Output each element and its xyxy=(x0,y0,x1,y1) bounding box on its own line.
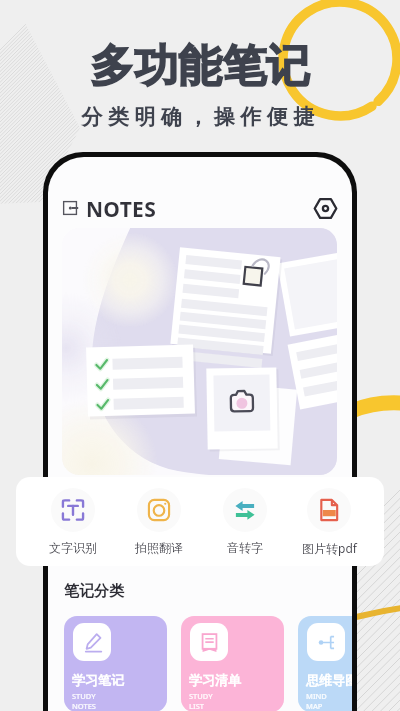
staticText: 多功能笔记 xyxy=(90,39,310,94)
staticText: NOTES xyxy=(72,701,96,711)
button[interactable]: 拍照翻译 xyxy=(116,488,202,555)
staticText: 思维导图 xyxy=(306,672,352,688)
staticText: 分类明确，操作便捷 xyxy=(81,104,320,130)
staticText: MIND xyxy=(306,691,327,701)
button[interactable]: Settings xyxy=(310,193,340,223)
staticText: 学习笔记 xyxy=(72,672,124,688)
staticText: STUDY xyxy=(72,691,96,701)
staticText: 文字识别 xyxy=(49,540,97,555)
button[interactable]: NOTES xyxy=(63,195,157,221)
button[interactable]: 图片转pdf xyxy=(288,488,370,556)
staticText: STUDY xyxy=(189,691,213,701)
staticText: 笔记分类 xyxy=(64,582,124,601)
staticText: NOTES xyxy=(86,195,157,221)
staticText: 拍照翻译 xyxy=(135,540,183,555)
staticText: LIST xyxy=(189,701,204,711)
button[interactable]: 学习清单 xyxy=(181,616,284,711)
button[interactable]: 思维导图 xyxy=(298,616,352,711)
staticText: MAP xyxy=(306,701,323,711)
staticText: 学习清单 xyxy=(189,672,241,688)
button[interactable]: 学习笔记 xyxy=(64,616,167,711)
staticText: 图片转pdf xyxy=(302,540,357,556)
button[interactable]: 音转字 xyxy=(202,488,288,555)
staticText: 音转字 xyxy=(227,540,263,555)
button[interactable]: 文字识别 xyxy=(30,488,116,555)
